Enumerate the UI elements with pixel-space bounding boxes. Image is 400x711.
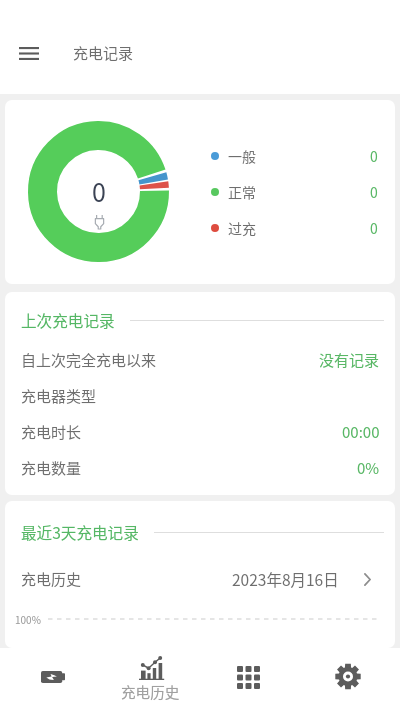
staticText: 0% <box>357 457 380 479</box>
button[interactable]: Settings <box>300 648 400 711</box>
staticText: 充电历史 <box>121 681 180 702</box>
staticText: 没有记录 <box>319 349 380 371</box>
staticText: 自上次完全充电以来 <box>21 349 157 371</box>
staticText: 一般 <box>228 146 256 166</box>
staticText: 2023年8月16日 <box>232 568 339 590</box>
button[interactable]: 充电历史 <box>5 566 395 592</box>
staticText: 0 <box>370 218 378 238</box>
staticText: 最近3天充电记录 <box>21 521 139 543</box>
staticText: 充电数量 <box>21 457 82 479</box>
staticText: 上次充电记录 <box>21 309 115 331</box>
staticText: 过充 <box>228 218 256 238</box>
staticText: 正常 <box>228 182 256 202</box>
staticText: 100% <box>15 612 41 626</box>
staticText: 充电器类型 <box>21 385 97 407</box>
button[interactable]: Apps <box>200 648 300 711</box>
staticText: 充电历史 <box>21 568 82 590</box>
staticText: 0 <box>370 146 378 166</box>
staticText: 充电时长 <box>21 421 82 443</box>
staticText: 0 <box>370 182 378 202</box>
button[interactable]: 充电历史 <box>100 648 200 711</box>
staticText: 充电记录 <box>73 42 134 64</box>
button[interactable]: Charging records <box>0 648 100 711</box>
staticText: 00:00 <box>342 421 380 443</box>
staticText: 0 <box>92 173 106 209</box>
button[interactable]: Menu <box>9 35 47 73</box>
